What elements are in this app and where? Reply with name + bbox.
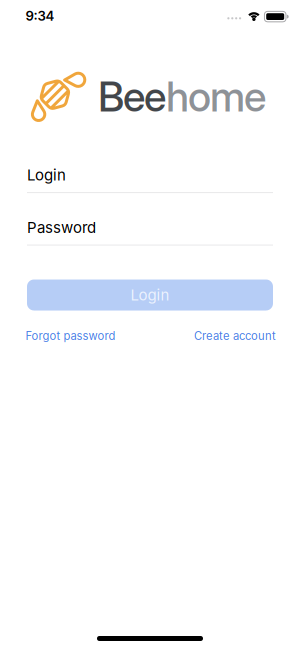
button[interactable]: Password [27, 219, 273, 244]
button[interactable]: Create account [194, 329, 276, 343]
staticText: Forgot password [25, 329, 115, 343]
staticText: Login [130, 286, 169, 304]
staticText: Login [27, 166, 66, 184]
button[interactable]: Login [27, 166, 273, 191]
button[interactable]: Forgot password [25, 329, 115, 343]
staticText: Bee [98, 72, 166, 121]
staticText: Password [27, 218, 96, 236]
button[interactable]: Login [27, 279, 273, 310]
staticText: 9:34 [25, 8, 54, 24]
staticText: Create account [194, 329, 276, 343]
staticText: home [166, 72, 266, 121]
